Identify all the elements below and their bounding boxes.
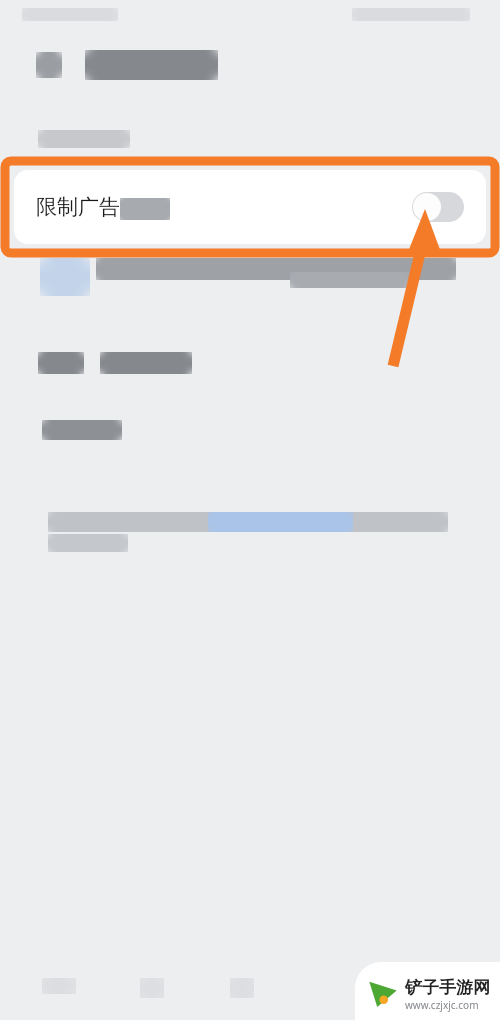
staticText: www.czjxjc.com [405,998,479,1012]
staticText: 铲子手游网 [405,977,490,998]
button[interactable]: Limit ads toggle [412,192,464,222]
button[interactable]: Back [36,52,62,78]
button[interactable]: 限制广告 [14,170,486,244]
staticText: 限制广告 [36,194,120,220]
